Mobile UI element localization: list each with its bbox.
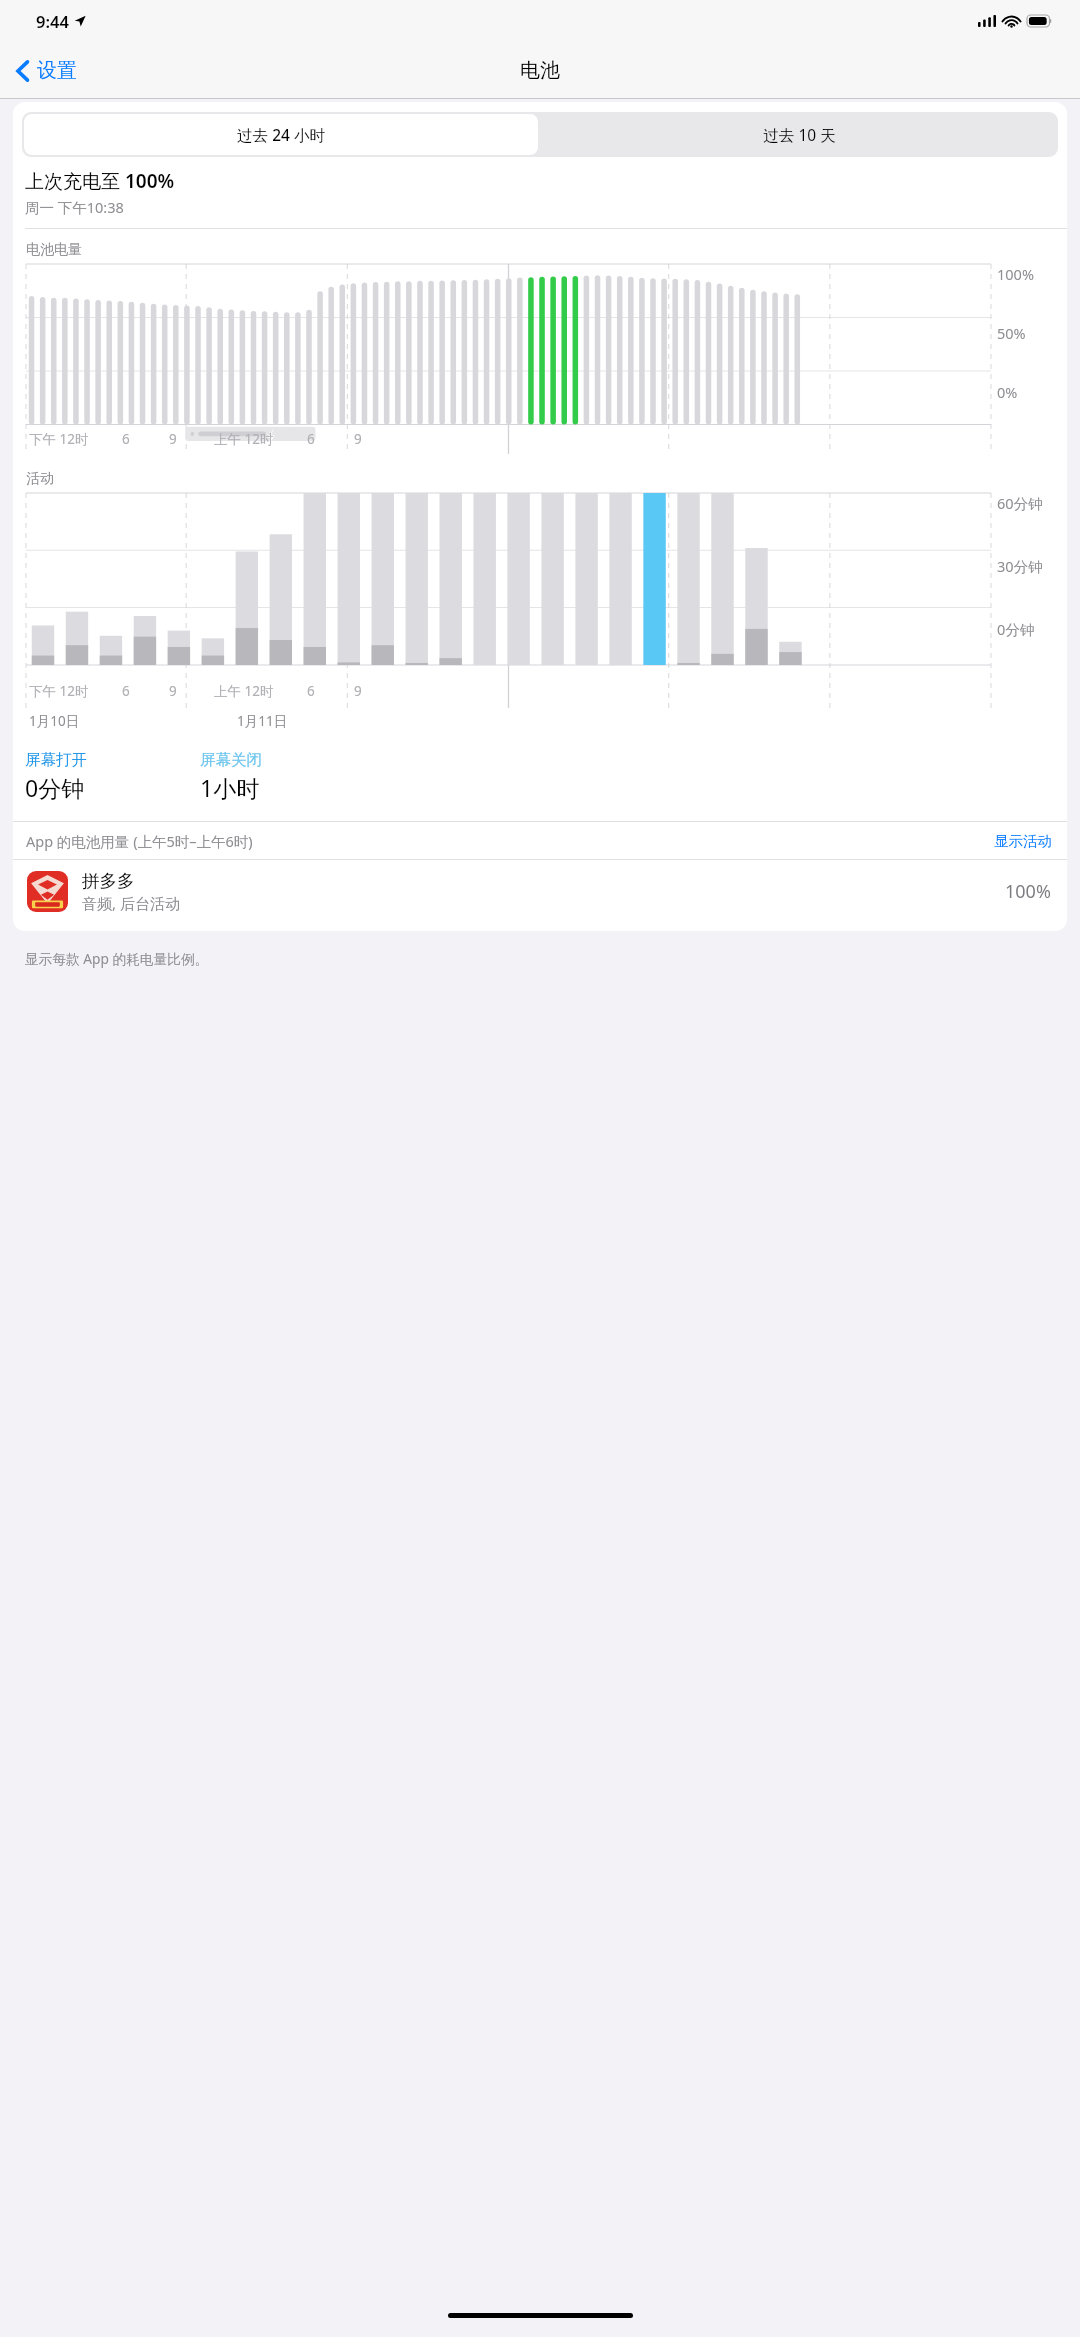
staticText: 1小时: [200, 772, 260, 803]
staticText: 100%: [1005, 879, 1051, 904]
staticText: 9: [169, 430, 177, 448]
staticText: 6: [307, 430, 315, 448]
staticText: 6: [122, 682, 130, 700]
staticText: 6: [122, 430, 130, 448]
staticText: 6: [307, 682, 315, 700]
staticText: 9: [169, 682, 177, 700]
staticText: 30分钟: [997, 556, 1043, 576]
staticText: 60分钟: [997, 493, 1043, 513]
staticText: 1月10日: [29, 712, 80, 730]
staticText: 设置: [37, 58, 77, 83]
staticText: 电池电量: [26, 241, 82, 259]
staticText: 显示活动: [994, 832, 1052, 850]
staticText: 屏幕关闭: [200, 750, 262, 770]
staticText: 音频, 后台活动: [82, 893, 180, 913]
button[interactable]: 显示活动: [994, 832, 1052, 850]
staticText: 上午 12时: [214, 430, 274, 448]
staticText: 0分钟: [997, 619, 1035, 639]
staticText: 电池: [520, 58, 560, 83]
staticText: 100%: [997, 264, 1034, 284]
staticText: 9: [354, 430, 362, 448]
button[interactable]: 过去 24 小时: [24, 114, 538, 155]
staticText: App 的电池用量 (上午5时–上午6时): [26, 831, 253, 851]
staticText: 9: [354, 682, 362, 700]
staticText: 拼多多: [82, 870, 135, 892]
staticText: 下午 12时: [29, 430, 89, 448]
staticText: 上次充电至 100%: [25, 168, 175, 194]
button[interactable]: 拼多多: [13, 860, 1067, 923]
staticText: 1月11日: [237, 712, 288, 730]
staticText: 屏幕打开: [25, 750, 87, 770]
staticText: 周一 下午10:38: [25, 197, 124, 217]
staticText: 0分钟: [25, 772, 85, 803]
staticText: 过去 10 天: [763, 124, 836, 145]
staticText: 显示每款 App 的耗电量比例。: [25, 949, 209, 968]
staticText: 0%: [997, 382, 1018, 402]
staticText: 9:44: [36, 10, 69, 32]
staticText: 上午 12时: [214, 682, 274, 700]
button[interactable]: 设置: [0, 52, 87, 89]
staticText: 过去 24 小时: [237, 124, 325, 145]
staticText: 活动: [26, 470, 54, 488]
button[interactable]: 过去 10 天: [540, 112, 1058, 157]
staticText: 50%: [997, 323, 1026, 343]
staticText: 下午 12时: [29, 682, 89, 700]
